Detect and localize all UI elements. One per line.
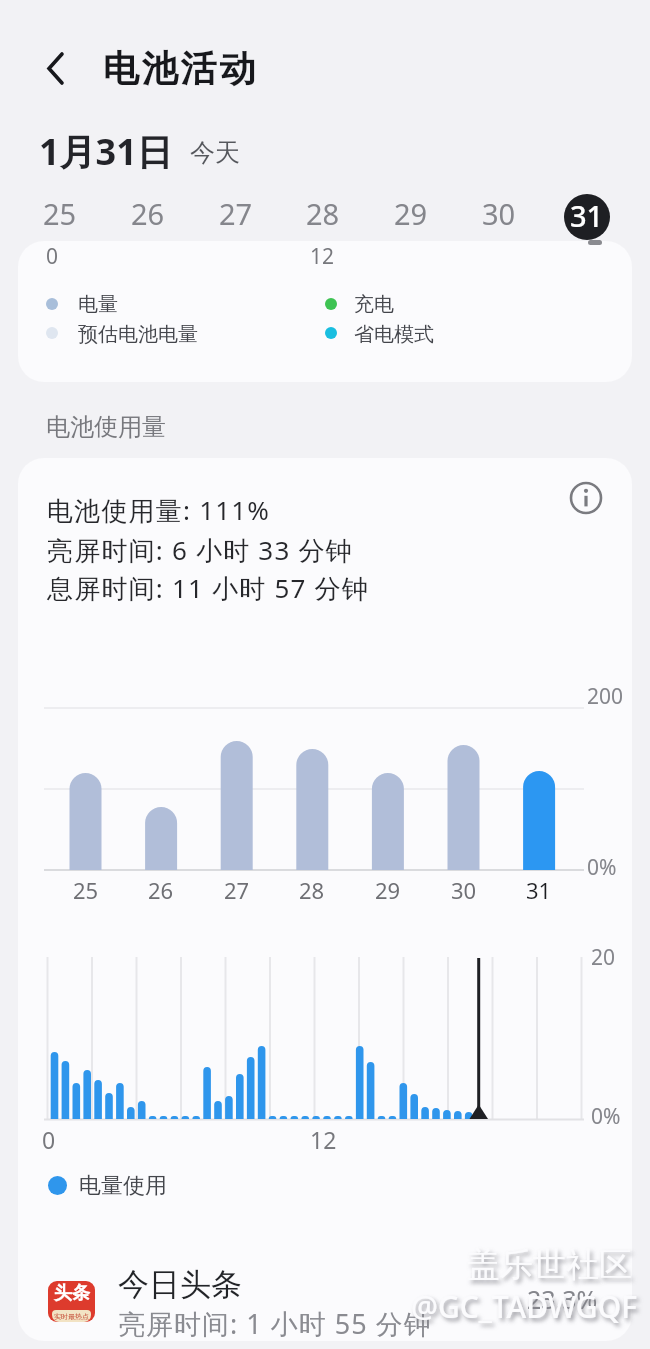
staticText: 0%	[587, 853, 617, 882]
staticText: 1月31日	[39, 127, 173, 176]
staticText: 电量	[78, 292, 118, 317]
staticText: 31	[570, 196, 604, 235]
staticText: 盖乐世社区	[467, 1244, 632, 1286]
staticText: 29	[375, 875, 401, 905]
button[interactable]	[564, 194, 610, 240]
staticText: 25	[73, 875, 99, 905]
staticText: 亮屏时间: 1 小时 55 分钟	[118, 1305, 432, 1342]
staticText: 实时最热点	[54, 1312, 89, 1321]
staticText: 200	[587, 682, 624, 711]
staticText: 30	[482, 194, 516, 233]
staticText: 今天	[190, 137, 240, 168]
staticText: 0%	[591, 1102, 621, 1131]
button[interactable]	[40, 1166, 220, 1206]
staticText: 30	[451, 875, 477, 905]
staticText: 28	[299, 875, 325, 905]
staticText: 预估电池电量	[78, 322, 198, 347]
button[interactable]	[36, 50, 74, 86]
staticText: 27	[219, 194, 253, 233]
staticText: 29	[394, 194, 428, 233]
staticText: 25	[43, 194, 77, 233]
staticText: 电池活动	[103, 46, 259, 91]
button[interactable]	[318, 318, 498, 350]
staticText: 充电	[354, 292, 394, 317]
button[interactable]	[30, 1255, 620, 1345]
staticText: 26	[131, 194, 165, 233]
button[interactable]	[318, 288, 498, 320]
staticText: 27	[224, 875, 250, 905]
staticText: 12	[310, 1124, 337, 1155]
button[interactable]	[40, 288, 260, 320]
staticText: 电池使用量: 111%	[47, 492, 271, 528]
staticText: 12	[310, 242, 335, 271]
staticText: 今日头条	[118, 1265, 242, 1304]
staticText: 0	[46, 242, 59, 271]
staticText: @GC_TADWGQF	[411, 1286, 637, 1327]
staticText: 20	[591, 943, 616, 972]
staticText: 0	[42, 1124, 56, 1155]
staticText: 31	[526, 875, 552, 905]
staticText: 26	[148, 875, 174, 905]
button[interactable]	[40, 318, 260, 350]
staticText: 28	[306, 194, 340, 233]
staticText: 头条	[54, 1282, 90, 1305]
staticText: 23.3%	[527, 1282, 598, 1316]
staticText: 亮屏时间: 6 小时 33 分钟	[47, 532, 353, 568]
staticText: 息屏时间: 11 小时 57 分钟	[47, 570, 369, 606]
staticText: 电池使用量	[46, 412, 166, 442]
staticText: 省电模式	[354, 322, 434, 347]
button[interactable]	[564, 476, 608, 520]
staticText: 电量使用	[79, 1172, 167, 1200]
